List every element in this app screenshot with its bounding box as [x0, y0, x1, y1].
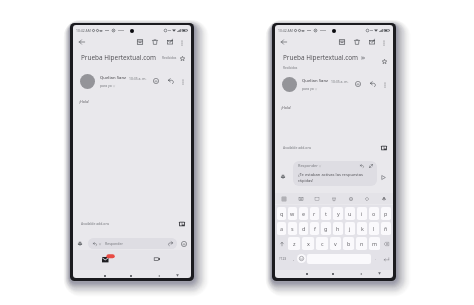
staticText: m [372, 240, 378, 247]
button[interactable]: Sender avatar [80, 74, 95, 89]
button[interactable]: Add-ons [379, 143, 388, 152]
button[interactable]: u [345, 207, 355, 220]
button[interactable]: More [380, 80, 389, 89]
staticText: Recibidos [162, 56, 177, 60]
button[interactable]: More [178, 77, 187, 86]
button[interactable]: Back [278, 36, 290, 48]
button[interactable]: Translate [330, 195, 338, 203]
button[interactable]: Enter [380, 252, 392, 265]
button[interactable]: Attach [76, 240, 83, 247]
button[interactable]: Voice input [380, 195, 388, 203]
staticText: j [349, 225, 351, 232]
staticText: f [314, 225, 316, 232]
button[interactable]: Emoji [179, 239, 188, 248]
button[interactable]: n [356, 237, 367, 250]
button[interactable]: Recents [303, 270, 310, 277]
button[interactable]: Backspace [381, 237, 392, 250]
staticText: r [313, 210, 316, 217]
staticText: ¿Te estaban activas las respuestas rápid… [298, 172, 374, 184]
button[interactable]: Sticker [297, 195, 305, 203]
staticText: k [361, 225, 364, 232]
button[interactable]: Clipboard [280, 195, 288, 203]
button[interactable]: z [288, 237, 300, 250]
button[interactable]: Hide keyboard [174, 272, 181, 278]
button[interactable]: l [369, 222, 379, 235]
staticText: Prueba Hipertextual.com [81, 53, 157, 62]
button[interactable]: Recents [101, 272, 108, 278]
staticText: Prueba Hipertextual.com [283, 53, 359, 62]
button[interactable]: Attach [279, 173, 286, 180]
button[interactable]: a [277, 222, 286, 235]
button[interactable]: g [321, 222, 331, 235]
button[interactable]: Delete [149, 36, 161, 48]
button[interactable]: GIF [313, 195, 321, 203]
staticText: a [280, 225, 284, 232]
button[interactable]: h [333, 222, 343, 235]
button[interactable]: Emoji [297, 254, 306, 263]
button[interactable]: Send [379, 173, 387, 181]
staticText: y [337, 210, 340, 217]
button[interactable]: Archive [336, 36, 348, 48]
button[interactable]: Reply [368, 79, 378, 89]
button[interactable]: Back [357, 270, 364, 277]
staticText: para yo [302, 86, 314, 91]
button[interactable]: Archive [134, 36, 146, 48]
button[interactable]: q [277, 207, 286, 220]
button[interactable]: Mark unread [366, 36, 378, 48]
button[interactable]: Responder [293, 161, 377, 186]
button[interactable]: x [302, 237, 314, 250]
staticText: d [302, 225, 306, 232]
button[interactable]: Symbols [276, 252, 290, 265]
button[interactable]: d [299, 222, 308, 235]
button[interactable]: r [310, 207, 319, 220]
button[interactable]: Add reaction [353, 79, 363, 89]
button[interactable]: t [321, 207, 331, 220]
button[interactable]: Camera [153, 255, 161, 263]
button[interactable]: Back [155, 272, 162, 278]
staticText: w [290, 210, 295, 217]
button[interactable]: Home [127, 272, 134, 278]
button[interactable]: p [381, 207, 391, 220]
button[interactable]: v [330, 237, 341, 250]
button[interactable]: Add reaction [151, 76, 161, 86]
button[interactable]: Hide keyboard [376, 270, 383, 277]
button[interactable]: Back [76, 36, 88, 48]
button[interactable]: m [369, 237, 380, 250]
button[interactable]: ñ [381, 222, 391, 235]
staticText: i [361, 210, 363, 217]
button[interactable]: More options [379, 38, 389, 48]
button[interactable]: o [369, 207, 379, 220]
button[interactable]: Add-ons [177, 219, 186, 228]
button[interactable]: More options [177, 38, 187, 48]
staticText: q [280, 210, 284, 217]
button[interactable]: Delete [351, 36, 363, 48]
button[interactable]: y [333, 207, 343, 220]
button[interactable]: Theme [363, 195, 371, 203]
button[interactable]: Sender avatar [282, 77, 297, 92]
button[interactable]: k [357, 222, 367, 235]
button[interactable]: Home [329, 270, 336, 277]
button[interactable]: Star [379, 56, 389, 66]
button[interactable]: b [343, 237, 354, 250]
button[interactable]: Star [177, 53, 187, 63]
staticText: c [321, 240, 324, 247]
staticText: ñ [384, 225, 388, 232]
button[interactable]: f [310, 222, 319, 235]
button[interactable]: Settings [347, 195, 355, 203]
button[interactable]: w [288, 207, 297, 220]
button[interactable]: s [288, 222, 297, 235]
button[interactable]: Responder [88, 238, 177, 249]
button[interactable]: i [357, 207, 367, 220]
button[interactable]: c [316, 237, 328, 250]
button[interactable]: Shift [276, 237, 287, 250]
button[interactable]: e [299, 207, 308, 220]
button[interactable]: Reply [166, 76, 176, 86]
button[interactable]: Gmail [102, 254, 115, 263]
button[interactable]: Mark unread [164, 36, 176, 48]
button[interactable]: j [345, 222, 355, 235]
staticText: 10:42 AM [278, 28, 293, 33]
staticText: b [347, 240, 351, 247]
button[interactable]: Comma [290, 252, 297, 265]
